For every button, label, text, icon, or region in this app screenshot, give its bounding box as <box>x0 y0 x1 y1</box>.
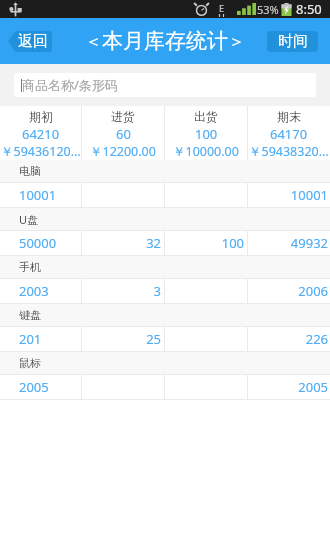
staticText: 60 <box>116 125 131 142</box>
button[interactable]: 201 <box>0 327 330 351</box>
staticText: 100 <box>195 125 218 142</box>
staticText: 2006 <box>253 282 328 300</box>
staticText: 期末 <box>277 109 301 124</box>
staticText: 10001 <box>19 186 76 204</box>
staticText: 201 <box>19 330 76 348</box>
staticText: 2003 <box>19 282 76 300</box>
staticText: 8:50 <box>296 0 322 18</box>
staticText: 226 <box>253 330 328 348</box>
button[interactable]: 50000 <box>0 231 330 255</box>
staticText: ￥59438320… <box>249 143 329 160</box>
button[interactable]: 10001 <box>0 183 330 207</box>
button[interactable]: 商品名称/条形码 <box>14 73 316 97</box>
staticText: 3 <box>87 282 161 300</box>
staticText: 100 <box>170 234 244 252</box>
staticText: 25 <box>87 330 161 348</box>
staticText: 10001 <box>253 186 328 204</box>
staticText: ￥59436120… <box>1 143 81 160</box>
button[interactable]: 电脑 <box>0 160 330 182</box>
staticText: ＜ <box>85 31 102 52</box>
staticText: 2005 <box>19 378 76 396</box>
button[interactable]: 2005 <box>0 375 330 399</box>
staticText: 进货 <box>111 109 135 124</box>
staticText: ￥12200.00 <box>90 143 156 160</box>
staticText: 本月库存统计 <box>102 28 228 54</box>
button[interactable]: U盘 <box>0 208 330 230</box>
staticText: 2005 <box>253 378 328 396</box>
staticText: 键盘 <box>19 308 41 322</box>
button[interactable]: 鼠标 <box>0 352 330 374</box>
staticText: ＞ <box>228 31 245 52</box>
staticText: U盘 <box>19 212 39 227</box>
staticText: 53% <box>257 2 279 17</box>
button[interactable]: 手机 <box>0 256 330 278</box>
staticText: 出货 <box>194 109 218 124</box>
staticText: ￥10000.00 <box>173 143 239 160</box>
button[interactable]: 时间 <box>267 31 318 52</box>
staticText: 电脑 <box>19 164 41 178</box>
staticText: 32 <box>87 234 161 252</box>
staticText: 时间 <box>278 32 308 51</box>
button[interactable]: 键盘 <box>0 304 330 326</box>
staticText: 手机 <box>19 260 41 274</box>
staticText: 49932 <box>253 234 328 252</box>
staticText: E <box>219 2 225 14</box>
staticText: 返回 <box>18 32 48 51</box>
staticText: 商品名称/条形码 <box>22 76 118 94</box>
staticText: 64170 <box>270 125 308 142</box>
staticText: 50000 <box>19 234 76 252</box>
staticText: 期初 <box>29 109 53 124</box>
staticText: 鼠标 <box>19 356 41 370</box>
button[interactable]: 2003 <box>0 279 330 303</box>
button[interactable]: ＜ <box>85 28 245 54</box>
staticText: 64210 <box>22 125 60 142</box>
button[interactable]: 返回 <box>8 31 52 52</box>
